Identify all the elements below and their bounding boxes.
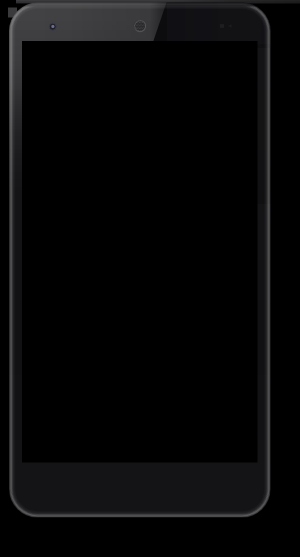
- button[interactable]: Phone device: [0, 0, 300, 557]
